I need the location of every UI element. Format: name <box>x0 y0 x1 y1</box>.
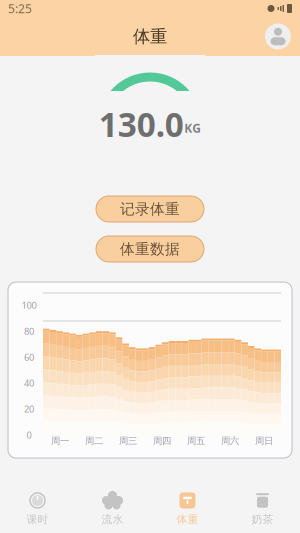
button[interactable]: 体重 <box>150 485 225 533</box>
staticText: 体重 <box>133 26 167 47</box>
staticText: 40 <box>24 377 34 389</box>
staticText: 体重 <box>176 513 198 526</box>
staticText: 5:25 <box>8 0 32 16</box>
staticText: 记录体重 <box>120 200 180 218</box>
button[interactable]: 流水 <box>75 485 150 533</box>
staticText: 周日 <box>255 435 273 447</box>
staticText: 60 <box>24 351 34 363</box>
staticText: 周五 <box>187 435 205 447</box>
staticText: 周六 <box>221 435 239 447</box>
staticText: 80 <box>24 325 34 337</box>
staticText: 体重数据 <box>120 240 180 258</box>
staticText: 流水 <box>101 513 123 526</box>
staticText: 周三 <box>119 435 137 447</box>
staticText: 130.0 <box>99 102 184 146</box>
staticText: 周二 <box>85 435 103 447</box>
staticText: 周四 <box>153 435 171 447</box>
button[interactable]: 记录体重 <box>96 196 204 222</box>
staticText: 周一 <box>51 435 69 447</box>
staticText: 100 <box>21 299 36 311</box>
button[interactable]: Profile <box>265 23 291 49</box>
staticText: 20 <box>24 403 34 415</box>
button[interactable]: 体重数据 <box>96 236 204 262</box>
staticText: 课时 <box>26 513 48 526</box>
staticText: 0 <box>26 429 31 441</box>
button[interactable]: 奶茶 <box>225 485 300 533</box>
staticText: 奶茶 <box>251 513 273 526</box>
button[interactable]: 课时 <box>0 485 75 533</box>
staticText: KG <box>184 120 201 136</box>
